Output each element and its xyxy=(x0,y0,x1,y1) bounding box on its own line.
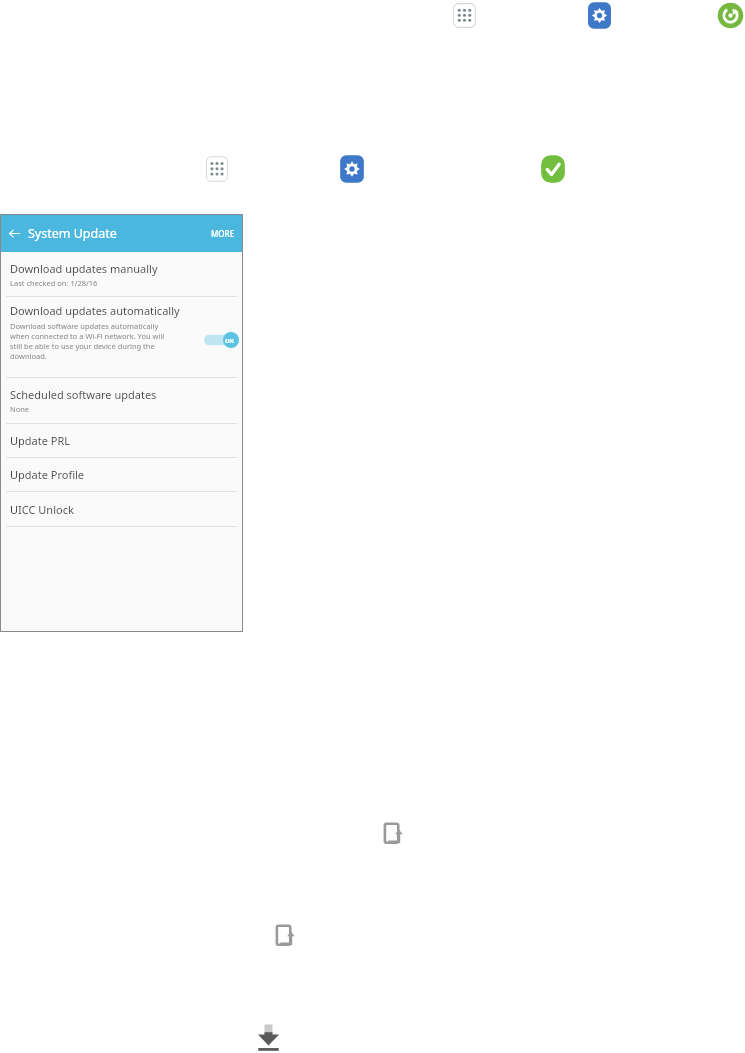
button[interactable]: Scheduled software updates xyxy=(0,378,243,423)
button[interactable]: Download updates automatically xyxy=(0,297,243,377)
button[interactable]: Update xyxy=(715,1,745,30)
button[interactable]: Apps xyxy=(202,155,232,183)
button[interactable]: Back xyxy=(0,214,28,252)
staticText: Update Profile xyxy=(10,467,85,482)
button[interactable]: UICC Unlock xyxy=(0,492,243,526)
staticText: Download software updates automatically … xyxy=(10,321,165,361)
staticText: UICC Unlock xyxy=(10,502,74,517)
staticText: Last checked on: 1/28/16 xyxy=(10,278,98,288)
button[interactable]: Confirm xyxy=(537,154,569,184)
staticText: Download updates manually xyxy=(10,261,158,276)
button[interactable]: Download xyxy=(253,1022,284,1053)
button[interactable]: Update Profile xyxy=(0,458,243,491)
button[interactable]: MORE xyxy=(203,214,243,252)
button[interactable]: Settings xyxy=(336,154,368,184)
staticText: Download updates automatically xyxy=(10,303,180,318)
staticText: MORE xyxy=(211,228,235,239)
staticText: Scheduled software updates xyxy=(10,387,157,402)
button[interactable]: Settings xyxy=(584,1,615,30)
button[interactable]: Toggle automatic downloads xyxy=(204,330,240,350)
button[interactable]: Device update xyxy=(382,822,411,850)
button[interactable]: Device update xyxy=(274,924,303,952)
button[interactable]: Download updates manually xyxy=(0,252,243,296)
button[interactable]: Apps xyxy=(449,2,480,29)
staticText: None xyxy=(10,404,30,414)
button[interactable]: Update PRL xyxy=(0,424,243,457)
staticText: ON xyxy=(225,337,234,344)
staticText: Update PRL xyxy=(10,433,71,448)
staticText: System Update xyxy=(28,225,117,242)
